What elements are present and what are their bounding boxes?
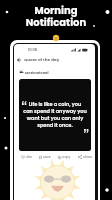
staticText: Like bbox=[26, 155, 32, 159]
button[interactable]: Copy bbox=[58, 155, 71, 159]
staticText: Motivational bbox=[25, 70, 49, 75]
staticText: Quote of the day bbox=[24, 57, 60, 63]
staticText: Morning Notification bbox=[0, 3, 112, 29]
other: Back bbox=[17, 58, 21, 62]
button[interactable]: Save bbox=[39, 155, 51, 159]
button[interactable]: Like bbox=[21, 155, 32, 159]
button[interactable]: Back bbox=[14, 55, 95, 65]
staticText: Save bbox=[43, 155, 51, 159]
staticText: 10:08 bbox=[28, 47, 38, 52]
staticText: Copy bbox=[62, 155, 71, 159]
button[interactable]: Share bbox=[78, 155, 93, 159]
staticText: Life is like a coin, you can spend it an… bbox=[19, 101, 91, 129]
staticText: Share bbox=[83, 155, 93, 159]
